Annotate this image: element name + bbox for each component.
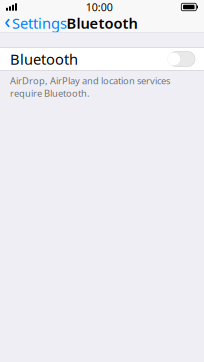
staticText: AirDrop, AirPlay and location services r…: [10, 74, 170, 99]
button[interactable]: Bluetooth: [0, 48, 204, 70]
staticText: Bluetooth: [10, 49, 78, 69]
staticText: 10:00: [86, 0, 113, 14]
button[interactable]: Settings: [0, 10, 73, 36]
staticText: Bluetooth: [66, 13, 137, 33]
staticText: Settings: [12, 13, 67, 33]
